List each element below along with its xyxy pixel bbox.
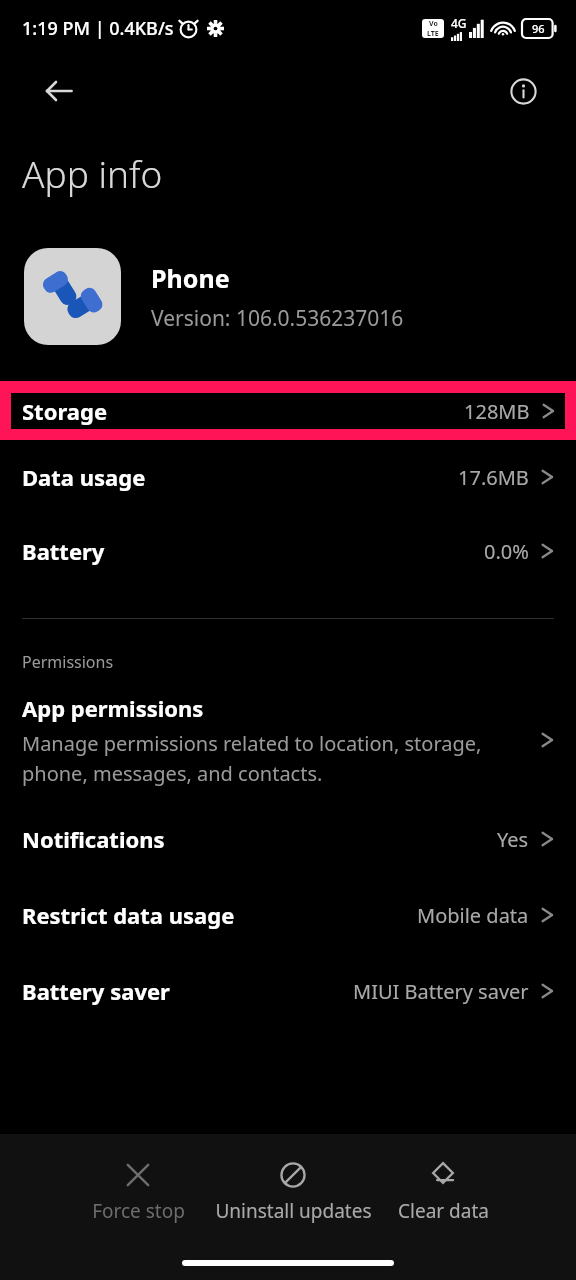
button[interactable]: Battery [0, 514, 576, 588]
staticText: Manage permissions related to location, … [22, 730, 531, 787]
button[interactable]: Force stop [63, 1156, 213, 1226]
staticText: Version: 106.0.536237016 [151, 304, 404, 333]
button[interactable]: Back [30, 62, 88, 120]
staticText: Restrict data usage [22, 900, 235, 930]
staticText: 128MB [464, 398, 530, 425]
staticText: 0.0% [484, 538, 529, 565]
staticText: 4G [451, 15, 467, 31]
staticText: MIUI Battery saver [353, 978, 529, 1005]
button[interactable]: Data usage [0, 440, 576, 514]
staticText: Force stop [92, 1198, 185, 1224]
staticText: 17.6MB [458, 464, 529, 491]
button[interactable]: Clear data [373, 1156, 513, 1226]
button[interactable]: Restrict data usage [0, 877, 576, 953]
staticText: Phone [151, 261, 230, 295]
staticText: Battery [22, 536, 105, 566]
button[interactable]: Battery saver [0, 953, 576, 1029]
staticText: Battery saver [22, 976, 170, 1006]
staticText: Uninstall updates [215, 1198, 372, 1224]
staticText: Storage [22, 396, 108, 426]
button[interactable]: Notifications [0, 801, 576, 877]
staticText: Data usage [22, 462, 146, 492]
button[interactable]: App permissions [0, 691, 576, 801]
staticText: App permissions [22, 693, 204, 723]
staticText: App info [22, 148, 163, 198]
button[interactable]: App details [497, 65, 549, 117]
staticText: Yes [497, 826, 529, 853]
staticText: Clear data [398, 1198, 489, 1224]
staticText: LTE [427, 29, 439, 38]
staticText: Vo [429, 19, 438, 29]
button[interactable]: Uninstall updates [213, 1156, 373, 1226]
staticText: Notifications [22, 824, 165, 854]
staticText: 96 [532, 21, 545, 36]
button[interactable]: Storage [0, 381, 576, 440]
staticText: Mobile data [417, 902, 529, 929]
staticText: Permissions [22, 651, 114, 673]
staticText: 1:19 PM | 0.4KB/s [22, 16, 174, 41]
